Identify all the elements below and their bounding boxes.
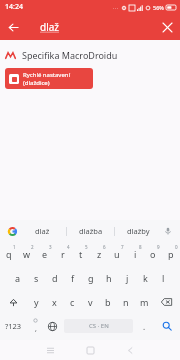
button[interactable]: z xyxy=(90,242,108,266)
button[interactable]: y xyxy=(27,290,45,314)
staticText: o xyxy=(150,248,156,260)
staticText: j xyxy=(126,272,129,284)
button[interactable]: dlažba xyxy=(67,220,114,242)
button[interactable]: Period xyxy=(136,314,153,338)
staticText: 0 xyxy=(175,244,178,250)
button[interactable]: p xyxy=(162,242,180,266)
staticText: ?123 xyxy=(5,321,22,331)
button[interactable]: d xyxy=(46,266,64,290)
button[interactable]: Search xyxy=(153,314,180,338)
button[interactable]: Comma xyxy=(27,314,44,338)
button[interactable]: Google xyxy=(6,225,18,237)
staticText: 4 xyxy=(67,244,70,250)
button[interactable]: h xyxy=(100,266,118,290)
staticText: 56% xyxy=(153,4,164,11)
button[interactable]: u xyxy=(108,242,126,266)
button[interactable]: e xyxy=(36,242,54,266)
staticText: c xyxy=(70,296,75,308)
staticText: 2 xyxy=(31,244,34,250)
button[interactable]: g xyxy=(82,266,100,290)
staticText: s xyxy=(34,272,39,284)
button[interactable]: x xyxy=(45,290,63,314)
staticText: 14:24 xyxy=(5,2,23,12)
staticText: 3 xyxy=(49,244,52,250)
staticText: 7 xyxy=(121,244,124,250)
staticText: h xyxy=(106,272,112,284)
staticText: t xyxy=(79,248,83,260)
staticText: u xyxy=(114,248,120,260)
button[interactable]: r xyxy=(54,242,72,266)
staticText: e xyxy=(42,248,48,260)
staticText: w xyxy=(23,248,31,260)
button[interactable]: CS · EN xyxy=(64,319,133,333)
button[interactable]: s xyxy=(27,266,46,290)
staticText: . xyxy=(143,321,146,332)
button[interactable]: Voice input xyxy=(162,225,174,237)
button[interactable]: c xyxy=(63,290,81,314)
button[interactable]: m xyxy=(135,290,153,314)
staticText: dlaž xyxy=(35,226,50,236)
button[interactable]: v xyxy=(81,290,99,314)
staticText: 6 xyxy=(103,244,106,250)
button[interactable]: n xyxy=(117,290,135,314)
staticText: d xyxy=(52,272,58,284)
staticText: z xyxy=(97,248,102,260)
staticText: v xyxy=(88,296,93,308)
staticText: n xyxy=(123,296,129,308)
staticText: m xyxy=(140,296,149,308)
staticText: 8 xyxy=(139,244,142,250)
staticText: p xyxy=(168,248,174,260)
staticText: (dlaždice) xyxy=(23,79,50,87)
staticText: dlažby xyxy=(127,226,150,236)
button[interactable]: l xyxy=(154,266,172,290)
button[interactable]: Shift xyxy=(0,290,27,314)
staticText: dlažba xyxy=(79,226,103,236)
button[interactable]: Rychlé nastavení xyxy=(5,68,93,89)
button[interactable]: a xyxy=(8,266,27,290)
staticText: 9 xyxy=(157,244,160,250)
button[interactable]: b xyxy=(99,290,117,314)
staticText: Specifika MacroDroidu xyxy=(22,49,118,61)
staticText: y xyxy=(34,296,39,308)
staticText: q xyxy=(6,248,12,260)
button[interactable]: Change language xyxy=(44,314,61,338)
staticText: x xyxy=(52,296,57,308)
staticText: 5 xyxy=(85,244,88,250)
button[interactable]: Back xyxy=(0,14,26,40)
button[interactable]: k xyxy=(136,266,154,290)
staticText: dlaž xyxy=(40,20,60,34)
staticText: g xyxy=(88,272,94,284)
staticText: a xyxy=(15,272,21,284)
button[interactable]: Specifika MacroDroidu xyxy=(0,47,180,63)
staticText: l xyxy=(162,272,165,284)
staticText: r xyxy=(61,248,65,260)
button[interactable]: dlažby xyxy=(115,220,162,242)
button[interactable]: o xyxy=(144,242,162,266)
button[interactable]: j xyxy=(118,266,136,290)
staticText: , xyxy=(35,324,37,334)
staticText: f xyxy=(71,272,75,284)
button[interactable]: Home xyxy=(70,340,110,360)
staticText: i xyxy=(134,248,137,260)
staticText: k xyxy=(143,272,148,284)
staticText: CS · EN xyxy=(89,322,109,330)
staticText: Rychlé nastavení xyxy=(23,71,71,79)
button[interactable]: Recent apps xyxy=(30,340,70,360)
staticText: 1 xyxy=(13,244,16,250)
button[interactable]: w xyxy=(18,242,36,266)
button[interactable]: i xyxy=(126,242,144,266)
button[interactable]: f xyxy=(64,266,82,290)
button[interactable]: q xyxy=(0,242,18,266)
staticText: b xyxy=(105,296,111,308)
button[interactable]: ?123 xyxy=(0,314,27,338)
button[interactable]: Backspace xyxy=(153,290,180,314)
button[interactable]: Clear search xyxy=(154,14,180,40)
button[interactable]: dlaž xyxy=(18,220,66,242)
button[interactable]: t xyxy=(72,242,90,266)
